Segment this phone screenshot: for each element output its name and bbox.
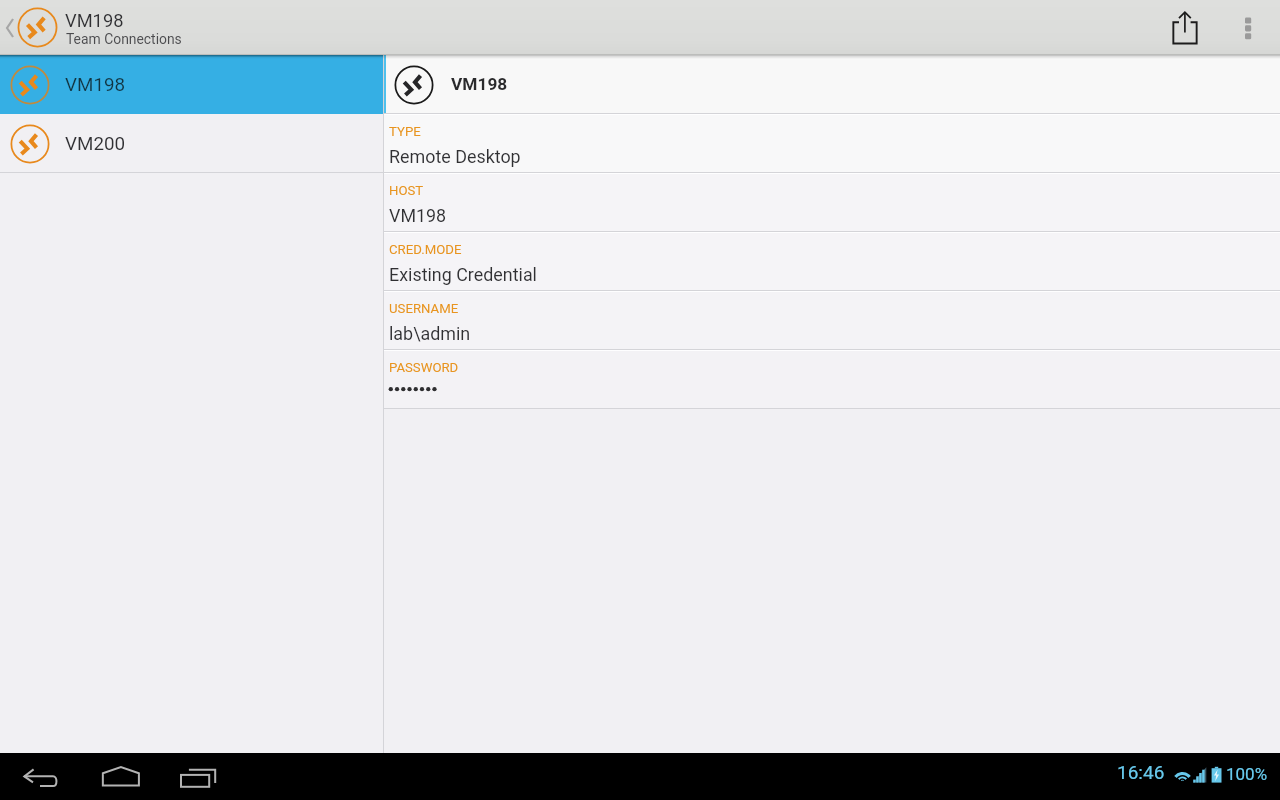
staticText: CRED.MODE [389, 242, 462, 257]
button[interactable]: More options [1228, 0, 1268, 55]
staticText: VM200 [65, 133, 126, 155]
button[interactable]: USERNAME [384, 291, 1280, 350]
staticText: 100% [1226, 764, 1268, 784]
staticText: 16:46 [1117, 761, 1165, 783]
button[interactable]: VM198 [0, 55, 383, 114]
button[interactable]: HOST [384, 173, 1280, 232]
staticText: TYPE [389, 124, 421, 139]
button[interactable]: VM198 [384, 55, 1280, 114]
button[interactable]: VM200 [0, 114, 383, 173]
button[interactable]: Home [96, 753, 144, 800]
staticText: Existing Credential [389, 264, 537, 285]
button[interactable]: Back [16, 753, 64, 800]
button[interactable]: PASSWORD [384, 350, 1280, 409]
staticText: HOST [389, 183, 424, 198]
button[interactable]: Recent apps [176, 753, 228, 800]
staticText: VM198 [389, 205, 447, 226]
staticText: lab\admin [389, 323, 471, 344]
staticText: PASSWORD [389, 360, 459, 375]
button[interactable]: Share [1157, 0, 1212, 50]
staticText: Team Connections [66, 31, 182, 47]
staticText: VM198 [65, 74, 126, 96]
button[interactable]: CRED.MODE [384, 232, 1280, 291]
staticText: VM198 [65, 10, 124, 31]
staticText: USERNAME [389, 301, 459, 316]
button[interactable]: TYPE [384, 114, 1280, 173]
button[interactable]: Back [0, 0, 16, 55]
staticText: Remote Desktop [389, 146, 521, 167]
staticText: VM198 [451, 74, 508, 94]
